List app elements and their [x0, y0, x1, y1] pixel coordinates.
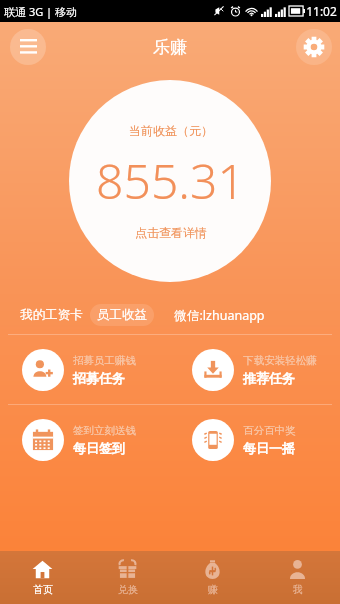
- button[interactable]: 赚: [170, 551, 255, 604]
- staticText: 员工收益: [97, 307, 147, 323]
- staticText: 赚: [208, 583, 218, 596]
- button[interactable]: 首页: [0, 551, 85, 604]
- button[interactable]: 我: [255, 551, 340, 604]
- staticText: 签到立刻送钱: [73, 424, 136, 437]
- button[interactable]: 招募员工赚钱: [0, 335, 170, 404]
- staticText: 首页: [33, 583, 53, 596]
- button[interactable]: 我的工资卡: [16, 304, 87, 326]
- staticText: 百分百中奖: [243, 424, 296, 437]
- button[interactable]: 兑换: [85, 551, 170, 604]
- staticText: 下载安装轻松赚: [243, 354, 317, 367]
- button[interactable]: 下载安装轻松赚: [170, 335, 340, 404]
- staticText: 微信:lzhuanapp: [174, 307, 265, 324]
- staticText: 855.31: [96, 148, 245, 213]
- staticText: 每日签到: [73, 440, 125, 456]
- staticText: 招募员工赚钱: [73, 354, 136, 367]
- button[interactable]: 签到立刻送钱: [0, 405, 170, 474]
- button[interactable]: Settings: [296, 29, 332, 65]
- staticText: 联通 3G | 移动: [4, 4, 77, 19]
- button[interactable]: 当前收益（元）: [69, 80, 271, 282]
- staticText: 我的工资卡: [20, 307, 83, 323]
- staticText: 当前收益（元）: [129, 123, 213, 138]
- button[interactable]: Menu: [10, 29, 46, 65]
- staticText: 每日一摇: [243, 440, 295, 456]
- staticText: 兑换: [118, 583, 138, 596]
- staticText: 乐赚: [153, 37, 187, 58]
- staticText: 11:02: [306, 3, 337, 19]
- button[interactable]: 百分百中奖: [170, 405, 340, 474]
- staticText: 推荐任务: [243, 370, 295, 386]
- staticText: 点击查看详情: [135, 225, 207, 240]
- button[interactable]: 员工收益: [90, 304, 154, 326]
- staticText: 招募任务: [73, 370, 125, 386]
- staticText: 我: [293, 583, 303, 596]
